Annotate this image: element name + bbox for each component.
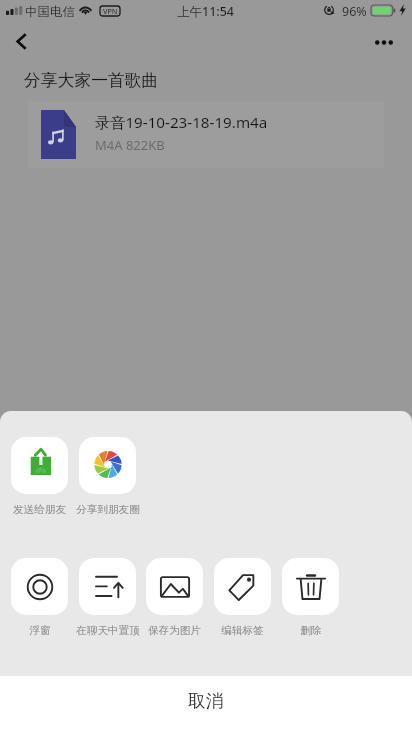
button[interactable]: Back — [0, 24, 44, 58]
staticText: 取消 — [188, 690, 224, 712]
staticText: 96% — [342, 3, 367, 20]
button[interactable]: 保存为图片 — [106, 558, 243, 646]
staticText: M4A 822KB — [95, 136, 165, 154]
staticText: 编辑标签 — [221, 624, 264, 637]
staticText: 分享大家一首歌曲 — [24, 70, 159, 91]
staticText: 发送给朋友 — [13, 503, 66, 516]
button[interactable]: 分享到朋友圈 — [39, 437, 176, 525]
staticText: 分享到朋友圈 — [76, 503, 140, 516]
button[interactable]: 录音19-10-23-18-19.m4a — [28, 101, 384, 168]
staticText: 上午11:54 — [177, 3, 235, 20]
staticText: 录音19-10-23-18-19.m4a — [95, 112, 268, 133]
button[interactable]: More options — [364, 26, 412, 58]
button[interactable]: 发送给朋友 — [0, 437, 108, 525]
button[interactable]: 在聊天中置顶 — [39, 558, 176, 646]
staticText: 浮窗 — [29, 624, 51, 637]
button[interactable]: 删除 — [242, 558, 379, 646]
button[interactable]: 取消 — [0, 676, 412, 732]
staticText: 保存为图片 — [148, 624, 201, 637]
staticText: VPN — [103, 6, 118, 16]
staticText: 中国电信 — [25, 4, 75, 20]
button[interactable]: 编辑标签 — [174, 558, 311, 646]
staticText: 在聊天中置顶 — [76, 624, 140, 637]
staticText: 删除 — [300, 624, 322, 637]
button[interactable]: 浮窗 — [0, 558, 108, 646]
